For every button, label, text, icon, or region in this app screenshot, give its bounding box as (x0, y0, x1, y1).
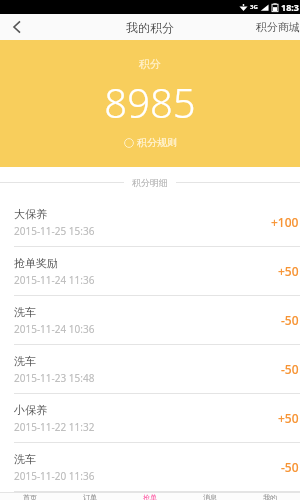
staticText: 我的 (263, 493, 277, 500)
staticText: 消息 (203, 493, 217, 500)
button[interactable]: 消息 (180, 493, 240, 500)
button[interactable]: 洗车 (0, 296, 300, 345)
staticText: 2015-11-24 10:36 (14, 322, 95, 336)
staticText: 2015-11-23 15:48 (14, 371, 95, 385)
staticText: 2015-11-22 11:32 (14, 420, 95, 434)
staticText: -50 (281, 459, 299, 475)
button[interactable]: 首页 (0, 493, 60, 500)
staticText: +50 (278, 410, 299, 426)
staticText: 积分规则 (137, 136, 177, 149)
staticText: 2015-11-25 15:36 (14, 224, 95, 238)
staticText: 积分 (139, 57, 161, 71)
staticText: 小保养 (14, 403, 47, 417)
staticText: 2015-11-24 11:36 (14, 273, 95, 287)
staticText: 首页 (23, 493, 37, 500)
staticText: -50 (281, 312, 299, 328)
button[interactable]: 积分规则 (124, 136, 177, 149)
staticText: 洗车 (14, 452, 36, 466)
staticText: +100 (271, 214, 299, 230)
staticText: 洗车 (14, 354, 36, 368)
button[interactable]: 抢单 (120, 493, 180, 500)
button[interactable]: 小保养 (0, 394, 300, 443)
staticText: 8985 (104, 75, 196, 129)
staticText: 抢单奖励 (14, 256, 58, 270)
staticText: 我的积分 (126, 20, 174, 35)
button[interactable]: 大保养 (0, 198, 300, 247)
staticText: 18:3 (281, 1, 299, 13)
staticText: 2015-11-20 11:36 (14, 469, 95, 483)
button[interactable]: 洗车 (0, 345, 300, 394)
button[interactable]: Back (0, 14, 34, 40)
button[interactable]: 积分商城 (248, 20, 300, 34)
staticText: 抢单 (143, 493, 157, 500)
staticText: 3G (250, 3, 258, 11)
button[interactable]: 订单 (60, 493, 120, 500)
staticText: +50 (278, 263, 299, 279)
staticText: 积分明细 (132, 177, 168, 188)
staticText: 大保养 (14, 207, 47, 221)
button[interactable]: 抢单奖励 (0, 247, 300, 296)
staticText: 洗车 (14, 305, 36, 319)
staticText: 积分商城 (256, 20, 300, 34)
staticText: -50 (281, 361, 299, 377)
button[interactable]: 洗车 (0, 443, 300, 492)
button[interactable]: 我的 (240, 493, 300, 500)
staticText: 订单 (83, 493, 97, 500)
